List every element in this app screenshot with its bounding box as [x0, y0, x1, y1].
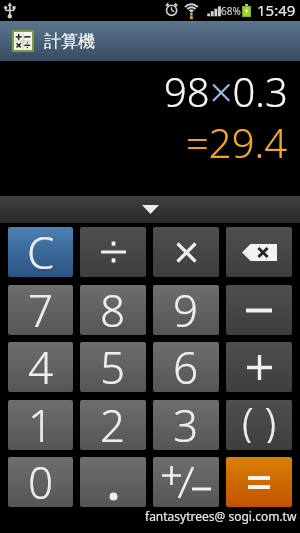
staticText: ( )	[242, 400, 277, 443]
button[interactable]: Equals	[226, 457, 292, 507]
staticText: 4	[28, 342, 54, 387]
button[interactable]: 計算機	[0, 21, 300, 61]
staticText: 5	[100, 342, 126, 387]
staticText: 15:49	[257, 0, 296, 20]
button[interactable]: Plus minus	[153, 457, 219, 507]
staticText: 68%	[221, 4, 241, 18]
button[interactable]: 5	[80, 342, 146, 392]
button[interactable]: 4	[8, 342, 73, 392]
staticText: 7	[28, 285, 54, 330]
button[interactable]: 7	[8, 285, 73, 335]
staticText: 9	[173, 285, 199, 330]
button[interactable]: Divide	[80, 227, 146, 277]
button[interactable]: Plus	[226, 342, 292, 392]
button[interactable]: 8	[80, 285, 146, 335]
staticText: 2	[100, 400, 126, 445]
staticText: 98×0.3	[164, 64, 288, 118]
staticText: =29.4	[186, 115, 288, 169]
button[interactable]: 9	[153, 285, 219, 335]
button[interactable]	[80, 457, 146, 507]
button[interactable]: C	[8, 227, 73, 277]
button[interactable]: Multiply	[153, 227, 219, 277]
button[interactable]: 1	[8, 400, 73, 450]
button[interactable]: Collapse keypad	[0, 196, 300, 223]
button[interactable]: 0	[8, 457, 73, 507]
button[interactable]: Minus	[226, 285, 292, 335]
staticText: 計算機	[44, 31, 95, 52]
staticText: 0	[28, 457, 54, 502]
staticText: 1	[28, 400, 54, 445]
button[interactable]: 3	[153, 400, 219, 450]
staticText: C	[27, 227, 55, 272]
staticText: 8	[100, 285, 126, 330]
button[interactable]: 6	[153, 342, 219, 392]
button[interactable]: Parentheses	[226, 400, 292, 450]
staticText: fantasytrees@ sogi.com.tw	[145, 508, 297, 524]
button[interactable]: Backspace	[226, 227, 292, 277]
button[interactable]: 2	[80, 400, 146, 450]
staticText: 6	[173, 342, 199, 387]
staticText: 3	[173, 400, 199, 445]
